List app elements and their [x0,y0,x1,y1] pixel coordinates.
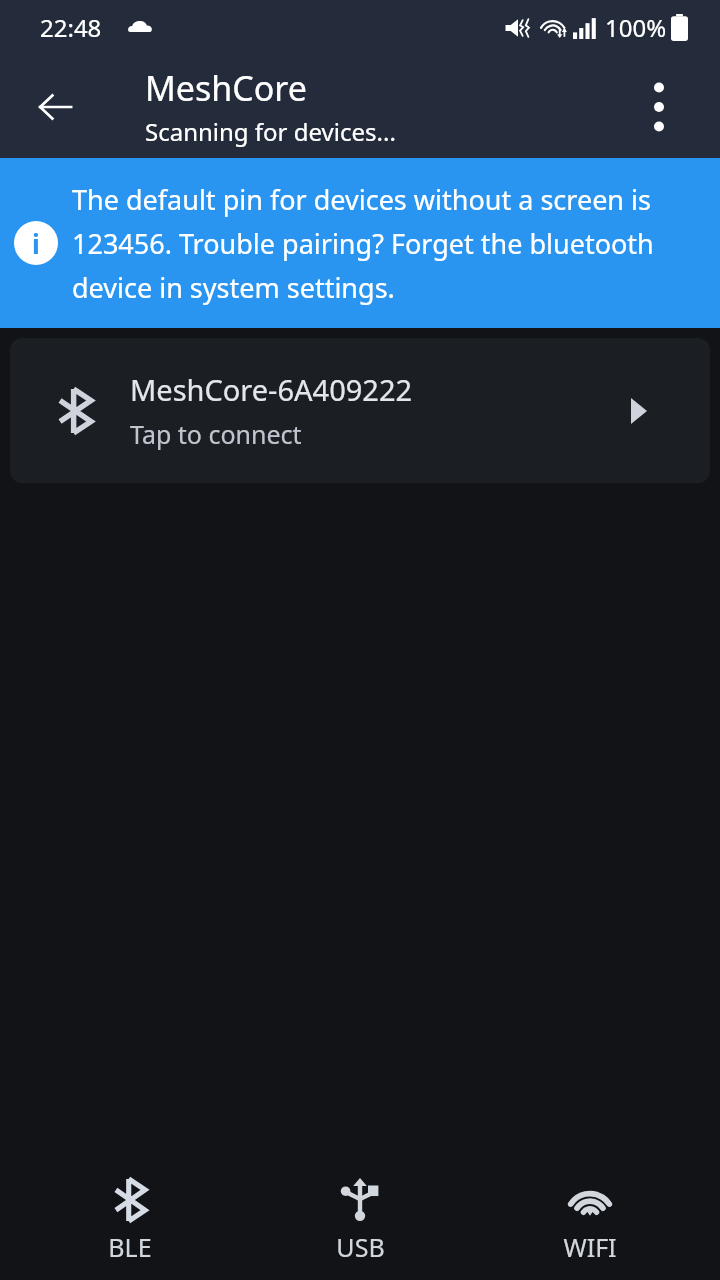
staticText: The default pin for devices without a sc… [72,181,696,305]
staticText: 100% [605,11,667,44]
button[interactable]: More options [628,76,690,138]
staticText: 22:48 [40,11,102,44]
button[interactable]: i [0,158,720,328]
staticText: BLE [108,1230,152,1264]
staticText: Scanning for devices... [145,115,396,148]
staticText: USB [336,1230,385,1264]
staticText: WIFI [563,1230,617,1264]
button[interactable]: WIFI [490,1176,690,1264]
staticText: MeshCore [145,65,307,111]
button[interactable]: Back [18,69,94,145]
staticText: Tap to connect [130,417,302,451]
button[interactable]: BLE [30,1176,230,1264]
button[interactable]: USB [260,1176,460,1264]
staticText: MeshCore-6A409222 [130,370,413,409]
button[interactable]: MeshCore-6A409222 [10,338,710,483]
staticText: i [32,226,40,261]
